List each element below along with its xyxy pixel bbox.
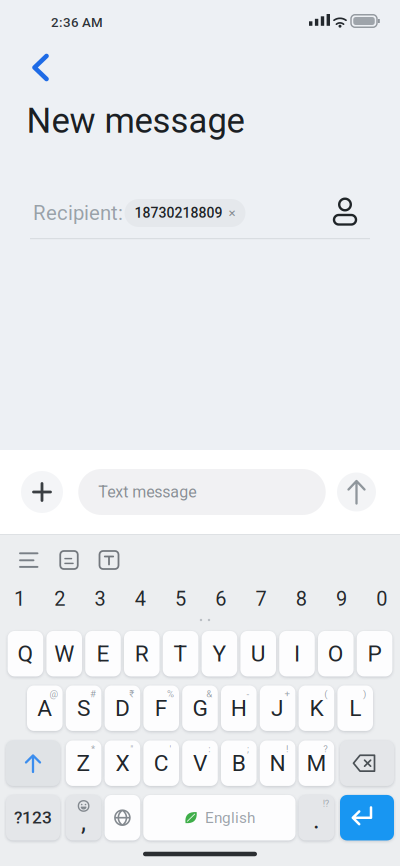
button[interactable]: Y [202, 631, 237, 676]
staticText: Z [77, 750, 91, 776]
button[interactable]: Keyboard menu [14, 546, 44, 574]
staticText: !? [323, 798, 329, 809]
staticText: D [115, 695, 130, 721]
staticText: ₹ [129, 688, 134, 700]
staticText: X [115, 750, 129, 776]
staticText: A [37, 695, 52, 721]
staticText: G [192, 695, 207, 721]
staticText: N [270, 750, 286, 776]
button[interactable]: L [337, 685, 373, 731]
staticText: F [155, 695, 168, 721]
staticText: , [81, 807, 86, 837]
staticText: ! [286, 743, 288, 755]
button[interactable]: N [260, 740, 295, 786]
button[interactable]: 2 [42, 584, 78, 614]
staticText: ; [247, 743, 249, 755]
staticText: ) [363, 688, 366, 700]
staticText: 2 [54, 587, 65, 611]
button[interactable]: V [182, 740, 218, 786]
staticText: O [328, 640, 344, 667]
staticText: . [313, 805, 320, 835]
button[interactable]: Symbols [6, 795, 60, 840]
button[interactable]: M [299, 740, 334, 786]
button[interactable]: Switch language [105, 795, 140, 840]
button[interactable]: Period [299, 795, 334, 840]
button[interactable]: 0 [364, 584, 400, 614]
staticText: V [193, 750, 207, 776]
staticText: Y [212, 640, 226, 667]
button[interactable]: Text editor [94, 546, 124, 574]
button[interactable]: O [318, 631, 354, 676]
button[interactable]: Space [143, 795, 295, 840]
button[interactable]: K [299, 685, 334, 731]
button[interactable]: J [260, 685, 295, 731]
staticText: ?123 [14, 807, 52, 828]
button[interactable]: Back [19, 45, 63, 89]
button[interactable]: G [182, 685, 218, 731]
button[interactable]: 9 [324, 584, 359, 614]
button[interactable]: Send [337, 472, 376, 511]
button[interactable]: Return [340, 795, 394, 840]
button[interactable]: Comma [66, 795, 101, 840]
button[interactable]: C [143, 740, 179, 786]
staticText: 0 [376, 587, 387, 611]
staticText: ' [169, 743, 171, 755]
staticText: L [349, 695, 361, 721]
button[interactable]: U [240, 631, 276, 676]
button[interactable]: Q [8, 631, 43, 676]
staticText: " [130, 743, 133, 755]
staticText: 2:36 AM [51, 15, 103, 30]
staticText: × [228, 205, 235, 221]
staticText: P [368, 640, 382, 667]
staticText: 5 [175, 587, 186, 611]
button[interactable]: Add attachment [21, 471, 63, 513]
staticText: B [232, 750, 246, 776]
staticText: R [135, 640, 149, 667]
button[interactable]: Z [66, 740, 101, 786]
button[interactable]: H [221, 685, 257, 731]
staticText: W [54, 640, 74, 667]
button[interactable]: Shift [6, 740, 60, 786]
button[interactable]: 1 [2, 584, 37, 614]
staticText: % [167, 688, 174, 700]
staticText: T [174, 640, 188, 667]
staticText: - [247, 688, 250, 700]
button[interactable]: Clipboard [54, 546, 84, 574]
staticText: 18730218809 [134, 205, 222, 221]
staticText: & [206, 688, 212, 700]
button[interactable]: W [46, 631, 82, 676]
staticText: ? [323, 743, 328, 755]
staticText: 8 [296, 587, 307, 611]
button[interactable]: T [163, 631, 198, 676]
button[interactable]: 6 [203, 584, 239, 614]
button[interactable]: A [27, 685, 63, 731]
button[interactable]: R [124, 631, 160, 676]
button[interactable]: 18730218809 [124, 199, 245, 227]
staticText: + [284, 688, 289, 700]
button[interactable]: 3 [82, 584, 118, 614]
staticText: 9 [336, 587, 347, 611]
button[interactable]: P [357, 631, 392, 676]
staticText: * [91, 743, 95, 755]
staticText: J [271, 695, 284, 721]
staticText: 1 [14, 587, 25, 611]
button[interactable]: Delete [340, 740, 394, 786]
button[interactable]: E [85, 631, 121, 676]
staticText: E [96, 640, 109, 667]
button[interactable]: F [143, 685, 179, 731]
button[interactable]: 7 [243, 584, 279, 614]
button[interactable]: X [105, 740, 140, 786]
button[interactable]: Choose contact [323, 195, 367, 235]
staticText: : [208, 743, 210, 755]
button[interactable]: 4 [122, 584, 158, 614]
button[interactable]: 8 [284, 584, 319, 614]
button[interactable]: Text message [78, 469, 326, 515]
staticText: English [205, 809, 255, 827]
staticText: ( [324, 688, 327, 700]
button[interactable]: S [66, 685, 101, 731]
button[interactable]: I [279, 631, 315, 676]
button[interactable]: 5 [163, 584, 198, 614]
button[interactable]: D [105, 685, 140, 731]
button[interactable]: B [221, 740, 257, 786]
staticText: U [251, 640, 266, 667]
